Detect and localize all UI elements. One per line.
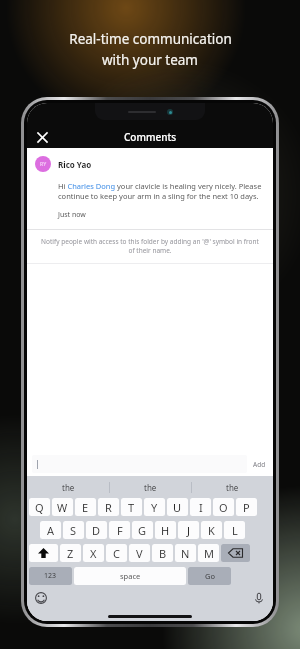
staticText: Hi Charles Dong your clavicle is healing… — [58, 181, 264, 201]
button[interactable]: L — [224, 521, 245, 539]
button[interactable]: Shift — [29, 544, 58, 562]
button[interactable]: the — [110, 476, 191, 498]
staticText: with your team — [102, 51, 198, 69]
button[interactable]: S — [63, 521, 84, 539]
staticText: Q — [35, 500, 44, 515]
staticText: L — [232, 523, 238, 538]
staticText: N — [181, 546, 190, 561]
staticText: Notify people with access to this folder… — [39, 237, 261, 255]
button[interactable]: I — [190, 498, 211, 516]
button[interactable]: X — [83, 544, 104, 562]
button[interactable]: O — [213, 498, 234, 516]
button[interactable]: V — [129, 544, 150, 562]
button[interactable]: W — [52, 498, 73, 516]
button[interactable]: Backspace — [221, 544, 250, 562]
staticText: G — [138, 523, 147, 538]
staticText: C — [113, 546, 120, 561]
staticText: P — [243, 500, 250, 515]
button[interactable]: RY — [35, 156, 273, 172]
staticText: Real-time communication — [69, 30, 232, 48]
button[interactable]: 123 — [29, 567, 72, 585]
button[interactable]: space — [74, 567, 186, 585]
button[interactable]: N — [175, 544, 196, 562]
button[interactable]: D — [86, 521, 107, 539]
staticText: R — [105, 500, 112, 515]
button[interactable]: Q — [29, 498, 50, 516]
button[interactable]: P — [236, 498, 257, 516]
staticText: F — [117, 523, 123, 538]
staticText: the — [144, 482, 157, 493]
staticText: A — [47, 523, 55, 538]
button[interactable]: U — [167, 498, 188, 516]
button[interactable]: G — [132, 521, 153, 539]
staticText: M — [204, 546, 214, 561]
staticText: I — [199, 500, 203, 515]
staticText: RY — [40, 161, 47, 168]
staticText: D — [92, 523, 101, 538]
button[interactable]: E — [75, 498, 96, 516]
staticText: B — [159, 546, 167, 561]
button[interactable]: the — [192, 476, 273, 498]
staticText: Add — [253, 460, 266, 469]
button[interactable]: J — [178, 521, 199, 539]
staticText: U — [173, 500, 182, 515]
staticText: Z — [67, 546, 74, 561]
staticText: O — [219, 500, 228, 515]
staticText: W — [57, 500, 68, 515]
staticText: Y — [151, 500, 158, 515]
button[interactable]: Close — [32, 127, 52, 147]
button[interactable]: Y — [144, 498, 165, 516]
button[interactable]: R — [98, 498, 119, 516]
staticText: Comments — [124, 130, 177, 144]
staticText: K — [208, 523, 215, 538]
staticText: V — [136, 546, 143, 561]
staticText: space — [120, 571, 141, 581]
staticText: the — [226, 482, 239, 493]
button[interactable]: M — [198, 544, 219, 562]
button[interactable]: A — [40, 521, 61, 539]
button[interactable]: H — [155, 521, 176, 539]
button[interactable]: Go — [188, 567, 231, 585]
button[interactable]: K — [201, 521, 222, 539]
button[interactable]: the — [27, 476, 109, 498]
staticText: X — [90, 546, 97, 561]
staticText: T — [128, 500, 135, 515]
staticText: Rico Yao — [58, 159, 92, 170]
button[interactable]: Add — [253, 460, 266, 469]
button[interactable]: B — [152, 544, 173, 562]
staticText: J — [187, 523, 191, 538]
button[interactable]: T — [121, 498, 142, 516]
button[interactable]: Emoji — [33, 590, 49, 606]
staticText: S — [70, 523, 77, 538]
staticText: Just now — [58, 210, 86, 220]
staticText: E — [82, 500, 89, 515]
staticText: 123 — [44, 571, 57, 581]
button[interactable]: Z — [60, 544, 81, 562]
staticText: the — [62, 482, 75, 493]
button[interactable]: F — [109, 521, 130, 539]
button[interactable]: C — [106, 544, 127, 562]
button[interactable]: Dictate — [251, 590, 267, 606]
staticText: Go — [205, 571, 215, 581]
button[interactable] — [32, 455, 247, 473]
staticText: H — [161, 523, 170, 538]
